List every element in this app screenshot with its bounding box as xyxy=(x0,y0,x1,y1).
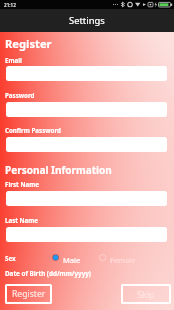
staticText: Password xyxy=(5,91,35,99)
button[interactable] xyxy=(6,66,167,81)
button[interactable]: Male xyxy=(50,250,84,265)
button[interactable] xyxy=(6,227,167,242)
staticText: First Name xyxy=(5,180,39,188)
staticText: Email xyxy=(5,56,22,64)
button[interactable] xyxy=(6,191,167,206)
staticText: Settings xyxy=(69,14,105,27)
staticText: Skip xyxy=(137,288,155,300)
staticText: Register xyxy=(5,36,52,51)
staticText: Female xyxy=(110,255,136,265)
staticText: Sex xyxy=(5,254,16,262)
staticText: Confirm Password xyxy=(5,126,61,134)
button[interactable]: Female xyxy=(97,250,139,265)
staticText: Register xyxy=(12,288,46,300)
button[interactable]: Register xyxy=(5,284,52,304)
staticText: Date of Birth (dd/mm/yyyy) xyxy=(5,269,91,278)
staticText: Personal Information xyxy=(5,163,112,177)
button[interactable] xyxy=(6,137,167,152)
staticText: Male xyxy=(63,255,81,265)
staticText: 21:12 xyxy=(4,2,16,8)
button[interactable]: Skip xyxy=(121,284,171,304)
button[interactable] xyxy=(6,102,167,117)
staticText: Last Name xyxy=(5,216,39,224)
